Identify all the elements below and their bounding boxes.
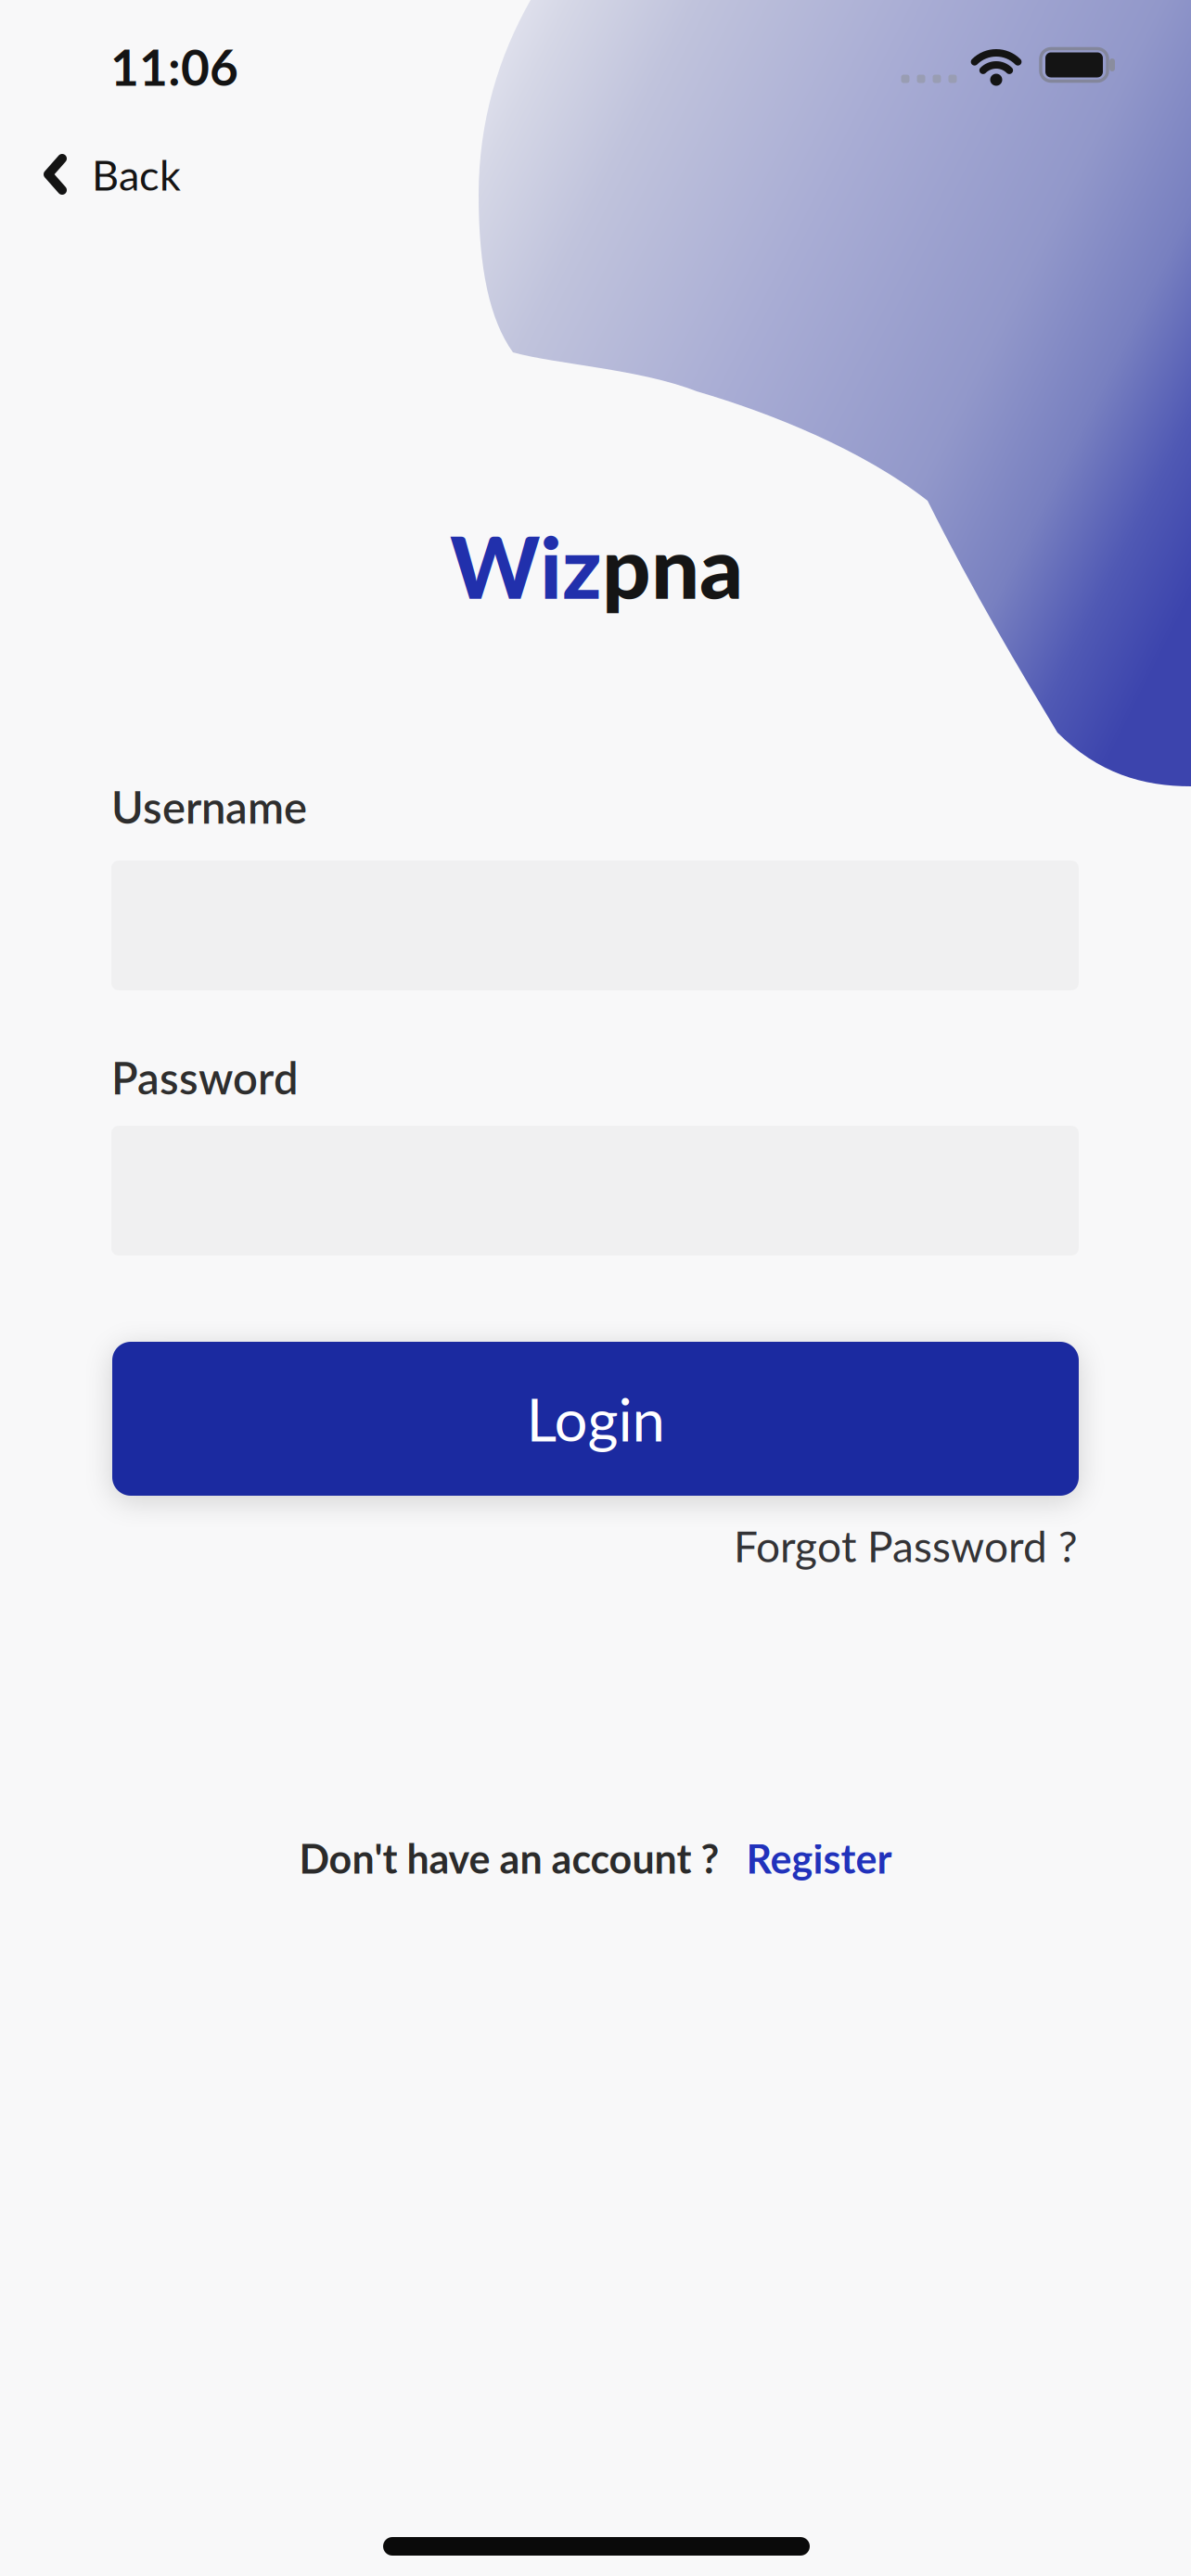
button[interactable]: Register xyxy=(746,1834,892,1882)
staticText: Don't have an account ? xyxy=(299,1834,719,1882)
staticText: Login xyxy=(526,1383,665,1454)
staticText: Password xyxy=(111,1051,299,1104)
staticText: Back xyxy=(92,149,181,199)
staticText: 11:06 xyxy=(110,37,238,96)
staticText: Username xyxy=(111,781,307,833)
button[interactable]: Forgot Password ? xyxy=(595,1520,1078,1571)
staticText: Wiz xyxy=(450,514,602,617)
button[interactable]: Back xyxy=(45,149,181,199)
staticText: Forgot Password ? xyxy=(734,1520,1078,1571)
button[interactable]: Login xyxy=(112,1342,1079,1496)
staticText: pna xyxy=(602,514,743,617)
staticText: Register xyxy=(746,1834,892,1882)
